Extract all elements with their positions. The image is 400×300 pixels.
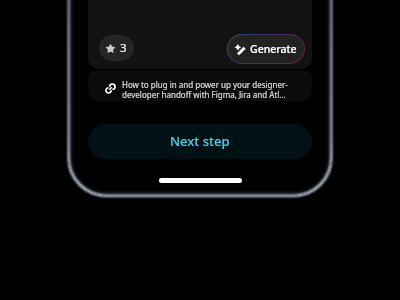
staticText: How to plug in and power up your designe… — [122, 79, 302, 100]
staticText: Generate — [250, 42, 297, 56]
other: Link — [105, 83, 116, 94]
staticText: Next step — [170, 132, 230, 150]
button[interactable] — [88, 70, 312, 101]
button[interactable]: Next step — [88, 124, 312, 159]
button[interactable]: 3 — [99, 35, 134, 61]
button[interactable]: Generate — [228, 35, 304, 63]
staticText: 3 — [120, 40, 127, 56]
